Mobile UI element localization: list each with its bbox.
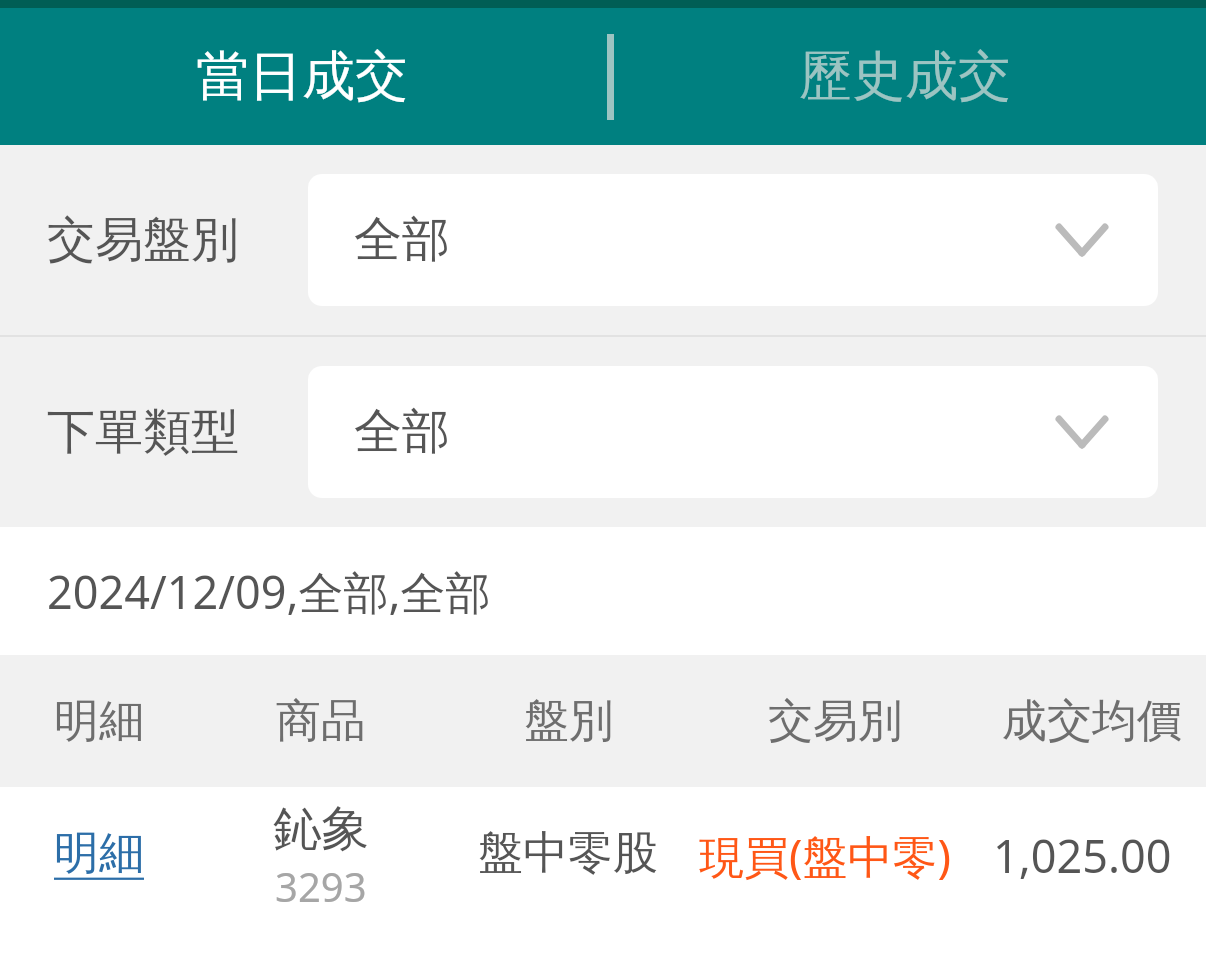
staticText: 明細 bbox=[54, 693, 144, 750]
button[interactable]: 歷史成交 bbox=[603, 8, 1206, 145]
staticText: 盤別 bbox=[524, 693, 614, 750]
staticText: 2024/12/09,全部,全部 bbox=[47, 561, 491, 622]
staticText: 成交均價 bbox=[1002, 693, 1182, 750]
staticText: 3293 bbox=[275, 859, 367, 913]
staticText: 盤中零股 bbox=[478, 825, 658, 882]
other: Expand dropdown bbox=[1052, 402, 1112, 462]
staticText: 明細 bbox=[54, 825, 144, 882]
button[interactable]: 全部 bbox=[308, 366, 1158, 498]
staticText: 全部 bbox=[354, 402, 450, 462]
staticText: 現買(盤中零) bbox=[699, 825, 952, 886]
staticText: 全部 bbox=[354, 210, 450, 270]
staticText: 商品 bbox=[276, 693, 366, 750]
other: Expand dropdown bbox=[1052, 210, 1112, 270]
staticText: 交易別 bbox=[768, 693, 903, 750]
staticText: 1,025.00 bbox=[993, 825, 1172, 886]
button[interactable]: 當日成交 bbox=[0, 8, 603, 145]
staticText: 下單類型 bbox=[47, 402, 239, 462]
staticText: 交易盤別 bbox=[47, 210, 239, 270]
staticText: 歷史成交 bbox=[799, 43, 1011, 110]
staticText: 鈊象 bbox=[273, 799, 369, 859]
button[interactable]: 全部 bbox=[308, 174, 1158, 306]
staticText: 當日成交 bbox=[196, 43, 408, 110]
button[interactable]: 明細 bbox=[0, 787, 1206, 947]
